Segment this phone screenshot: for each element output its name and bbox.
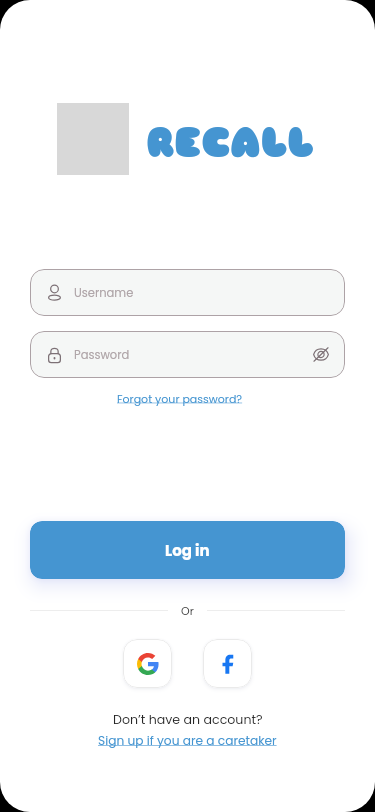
staticText: Log in bbox=[165, 540, 210, 561]
staticText: RECALL bbox=[146, 118, 315, 169]
button[interactable]: Sign in with Facebook bbox=[203, 639, 252, 688]
button[interactable]: Password field bbox=[30, 331, 345, 378]
staticText: Or bbox=[181, 603, 194, 618]
staticText: Password bbox=[74, 347, 130, 363]
staticText: Username bbox=[74, 285, 134, 301]
button[interactable]: Forgot your password? bbox=[113, 389, 247, 408]
staticText: Don’t have an account? bbox=[113, 711, 263, 729]
button[interactable]: Log in bbox=[30, 521, 345, 579]
button[interactable]: Sign up if you are a caretaker bbox=[94, 731, 281, 750]
button[interactable]: Username field bbox=[30, 269, 345, 316]
button[interactable]: Sign in with Google bbox=[123, 639, 172, 688]
